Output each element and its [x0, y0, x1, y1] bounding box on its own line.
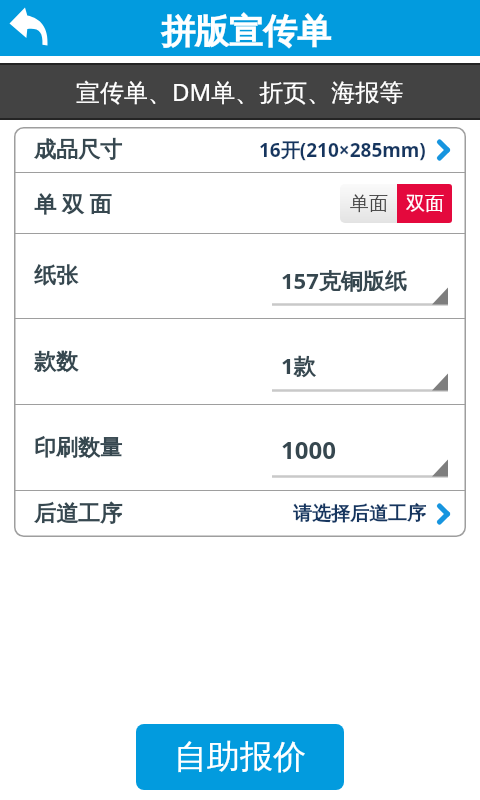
staticText: 单面 — [350, 192, 388, 216]
staticText: 自助报价 — [174, 736, 306, 778]
staticText: 双面 — [406, 192, 444, 216]
button[interactable]: 单面 — [340, 184, 397, 223]
staticText: 款数 — [34, 348, 78, 376]
staticText: 纸张 — [34, 262, 78, 290]
staticText: 后道工序 — [34, 500, 122, 528]
staticText: 印刷数量 — [34, 434, 122, 462]
staticText: 157克铜版纸 — [281, 265, 407, 295]
staticText: 单 双 面 — [34, 188, 112, 218]
staticText: 16开(210×285mm) — [259, 137, 426, 163]
button[interactable]: 成品尺寸 — [14, 127, 466, 172]
button[interactable]: 1000 — [272, 426, 448, 478]
staticText: 成品尺寸 — [34, 136, 122, 164]
button[interactable]: 双面 — [397, 184, 452, 223]
staticText: 1款 — [281, 350, 316, 380]
staticText: 拼版宣传单 — [161, 10, 331, 53]
staticText: 1000 — [281, 433, 336, 466]
staticText: 宣传单、DM单、折页、海报等 — [76, 75, 404, 108]
button[interactable]: 157克铜版纸 — [272, 254, 448, 306]
staticText: 请选择后道工序 — [293, 502, 426, 526]
button[interactable]: Back — [0, 0, 62, 56]
button[interactable]: 自助报价 — [136, 724, 344, 790]
button[interactable]: 1款 — [272, 340, 448, 392]
button[interactable]: 后道工序 — [14, 491, 466, 537]
